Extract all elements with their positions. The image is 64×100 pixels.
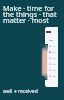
- staticText: received: [18, 88, 38, 95]
- staticText: well: [3, 88, 13, 95]
- staticText: Make · time for the things · that matter…: [3, 3, 57, 25]
